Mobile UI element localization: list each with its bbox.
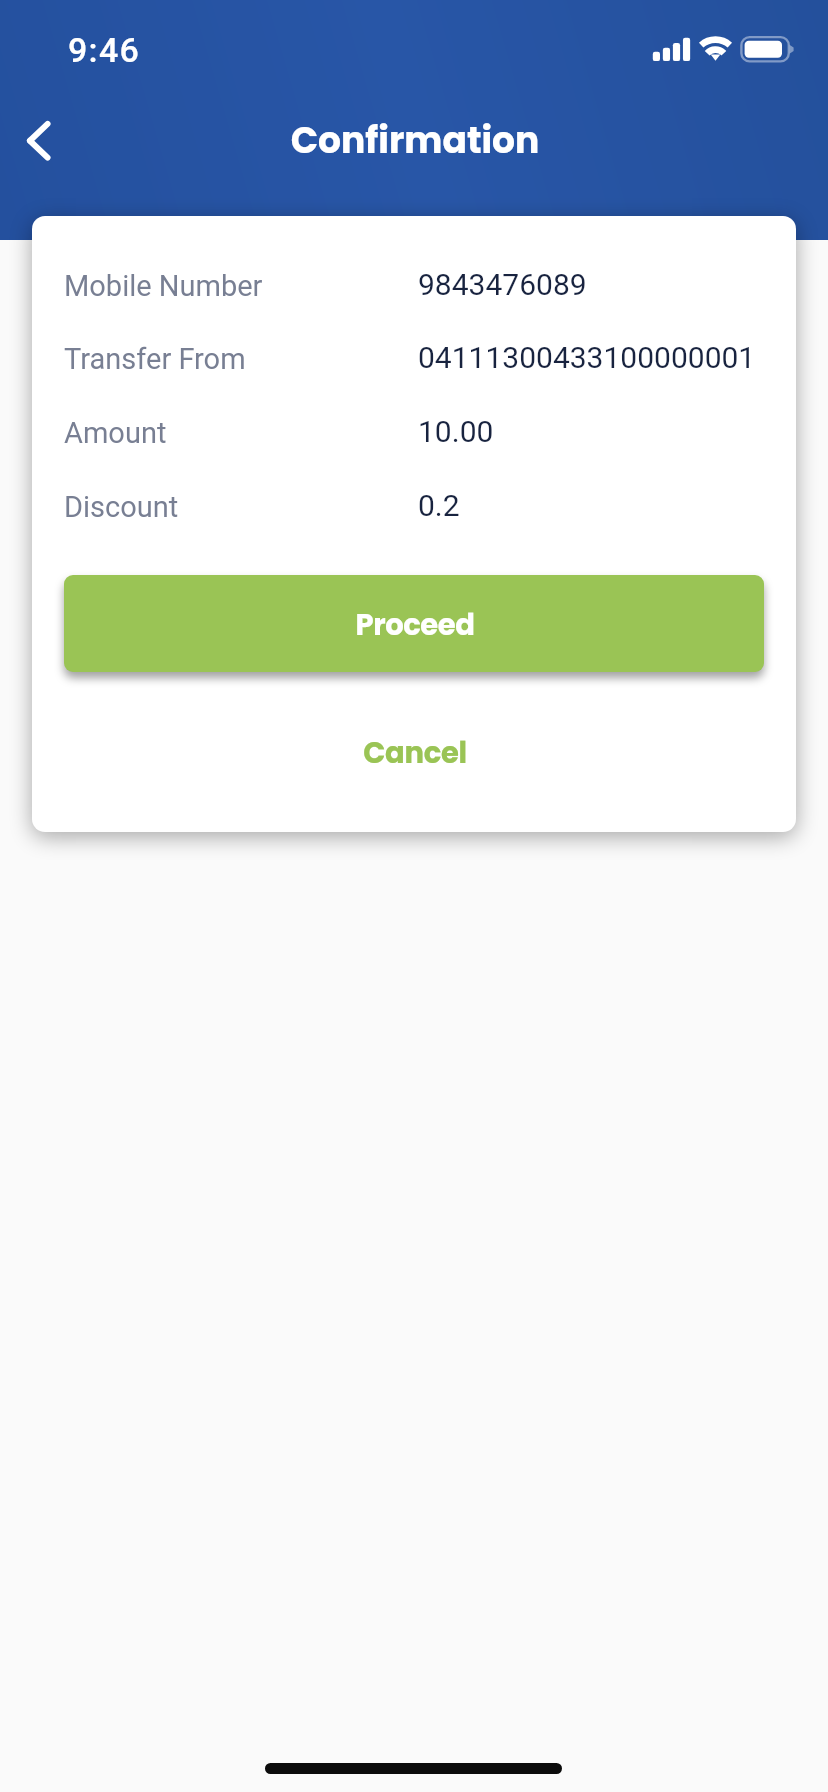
staticText: Amount [64, 416, 167, 450]
staticText: Mobile Number [64, 269, 263, 303]
button[interactable]: Proceed [64, 575, 764, 672]
staticText: Discount [64, 490, 179, 524]
staticText: 04111300433100000001 [418, 340, 756, 375]
staticText: 0.2 [418, 488, 460, 523]
staticText: Confirmation [1, 115, 828, 165]
staticText: Transfer From [64, 342, 246, 376]
button[interactable]: Cancel [64, 713, 764, 787]
staticText: Cancel [65, 733, 765, 774]
staticText: 9:46 [68, 30, 141, 70]
staticText: 10.00 [418, 414, 494, 449]
button[interactable]: Back [0, 96, 76, 184]
staticText: 9843476089 [418, 267, 587, 302]
staticText: Proceed [65, 605, 764, 646]
